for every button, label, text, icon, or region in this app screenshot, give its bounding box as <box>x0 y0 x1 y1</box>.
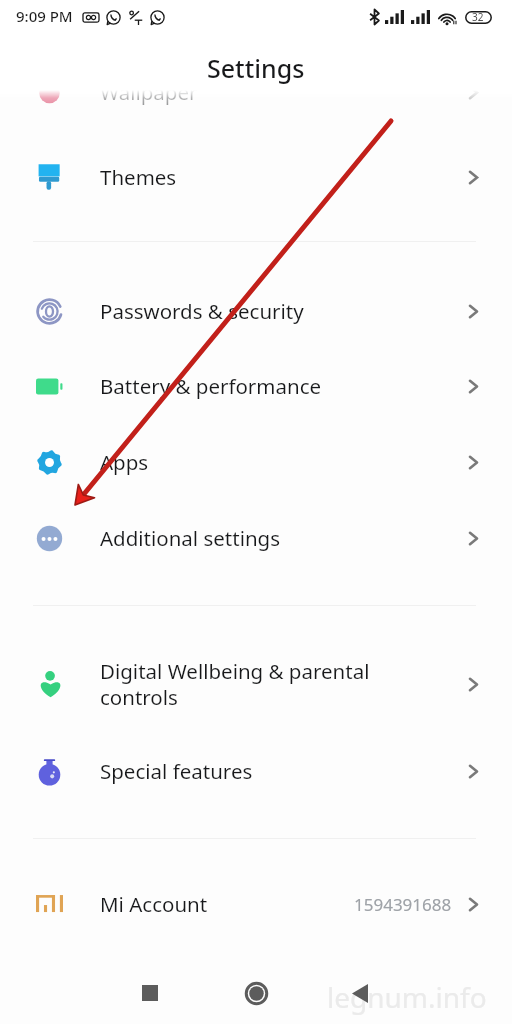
button[interactable]: Home <box>234 971 278 1015</box>
staticText: 32 <box>472 10 484 24</box>
button[interactable]: Back <box>338 971 382 1015</box>
button[interactable]: Additional settings <box>0 500 512 576</box>
staticText: Mi Account <box>100 890 354 918</box>
button[interactable]: Passwords & security <box>0 273 512 349</box>
staticText: 9:09 PM <box>16 6 73 26</box>
staticText: Battery & performance <box>100 372 468 400</box>
staticText: 1594391688 <box>354 893 452 916</box>
staticText: Themes <box>100 163 468 191</box>
button[interactable]: Recent apps <box>128 971 172 1015</box>
button[interactable]: Themes <box>0 139 512 215</box>
staticText: Settings <box>207 51 305 85</box>
button[interactable]: Digital Wellbeing & parental controls <box>0 646 512 722</box>
button[interactable]: Wallpaper <box>0 54 512 130</box>
staticText: Digital Wellbeing & parental controls <box>100 657 468 711</box>
button[interactable]: Battery & performance <box>0 348 512 424</box>
button[interactable]: Special features <box>0 733 512 809</box>
staticText: legnum.info <box>327 978 487 1016</box>
staticText: Wallpaper <box>100 78 468 106</box>
button[interactable]: Mi Account <box>0 866 512 942</box>
staticText: Passwords & security <box>100 297 468 325</box>
button[interactable]: Apps <box>0 424 512 500</box>
staticText: Apps <box>100 448 468 476</box>
staticText: Special features <box>100 757 468 785</box>
staticText: Additional settings <box>100 524 468 552</box>
